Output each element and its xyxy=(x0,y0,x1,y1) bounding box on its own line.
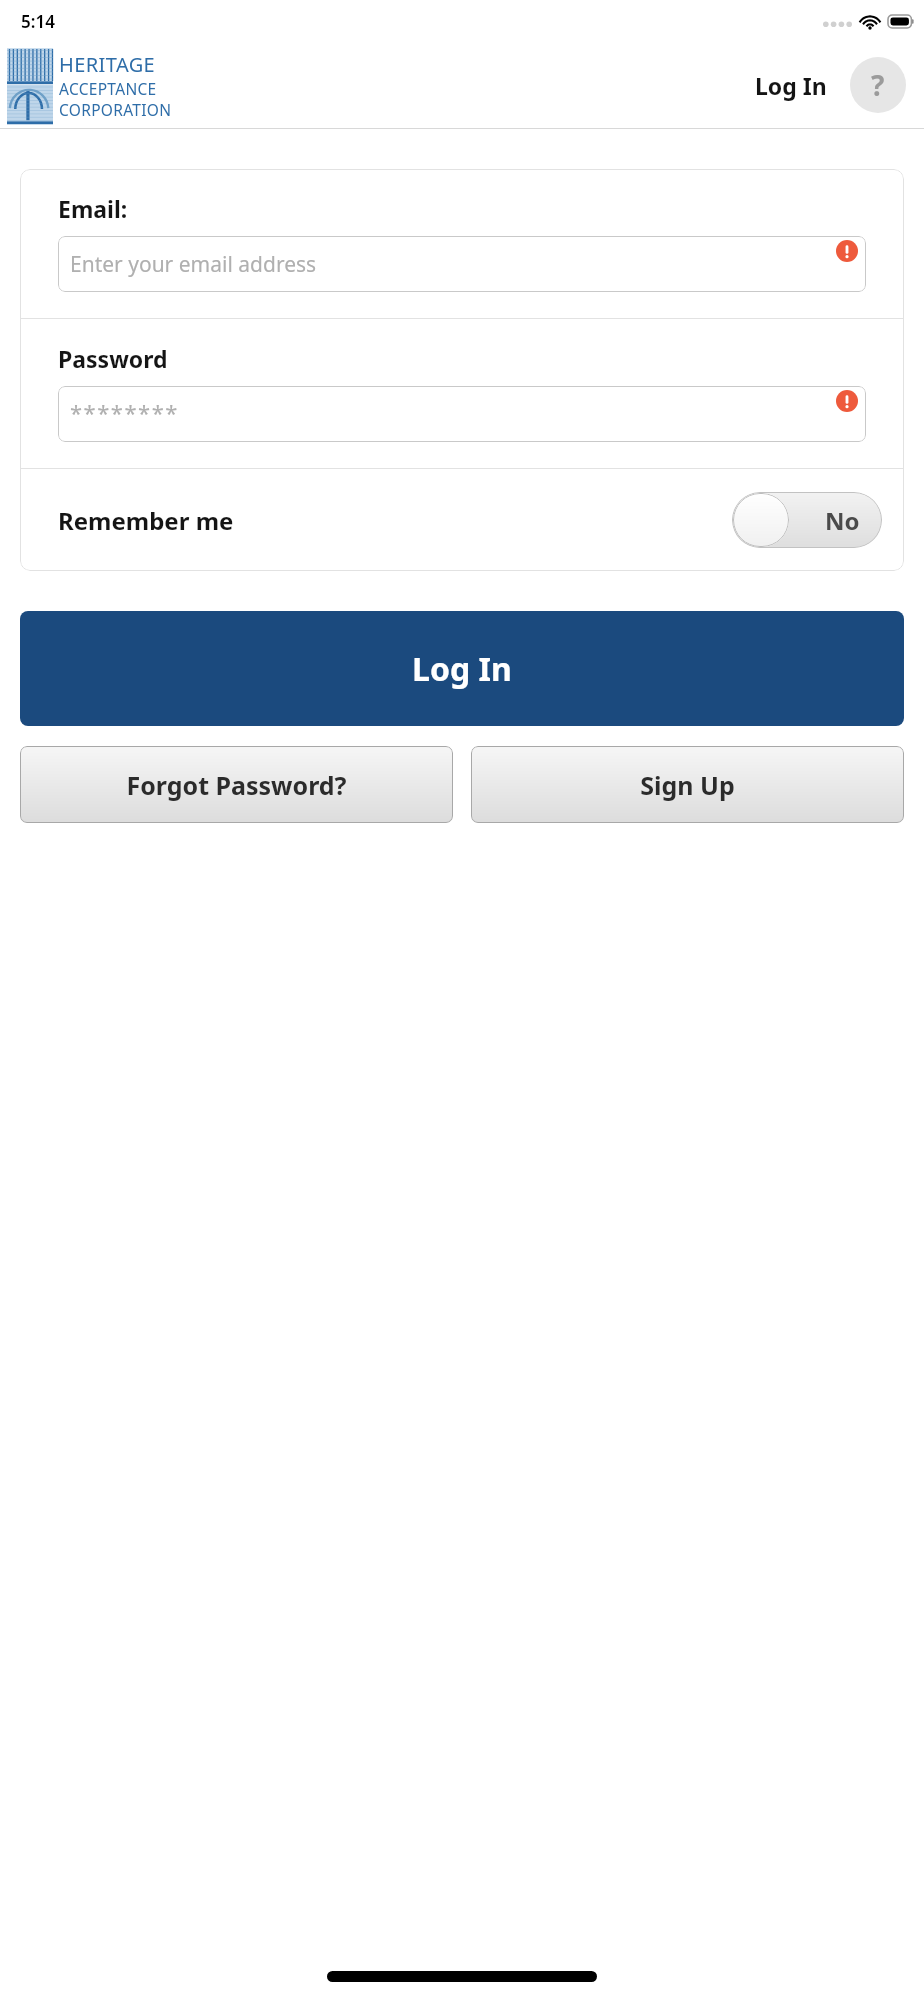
staticText: ******** xyxy=(70,397,179,427)
staticText: Forgot Password? xyxy=(126,768,347,802)
staticText: 5:14 xyxy=(21,10,55,33)
button[interactable]: Help xyxy=(850,57,906,113)
button[interactable]: ******** xyxy=(58,386,866,442)
staticText: ACCEPTANCE xyxy=(59,78,157,99)
staticText: Email: xyxy=(58,193,128,224)
staticText: No xyxy=(825,504,860,537)
button[interactable]: Enter your email address xyxy=(58,236,866,292)
staticText: Log In xyxy=(755,70,827,101)
staticText: ? xyxy=(871,66,885,104)
other: Error xyxy=(836,240,858,262)
staticText: HERITAGE xyxy=(59,51,156,78)
button[interactable]: Remember me xyxy=(20,469,904,571)
button[interactable]: Remember me toggle, off xyxy=(732,492,882,548)
button[interactable]: Log In xyxy=(20,611,904,726)
button[interactable]: Forgot Password? xyxy=(20,746,453,823)
staticText: Sign Up xyxy=(640,768,735,802)
staticText: Log In xyxy=(412,647,512,691)
staticText: CORPORATION xyxy=(59,99,172,120)
button[interactable]: Sign Up xyxy=(471,746,904,823)
staticText: Enter your email address xyxy=(70,250,317,279)
staticText: Password xyxy=(58,343,168,374)
other: Error xyxy=(836,390,858,412)
staticText: Remember me xyxy=(58,504,234,537)
